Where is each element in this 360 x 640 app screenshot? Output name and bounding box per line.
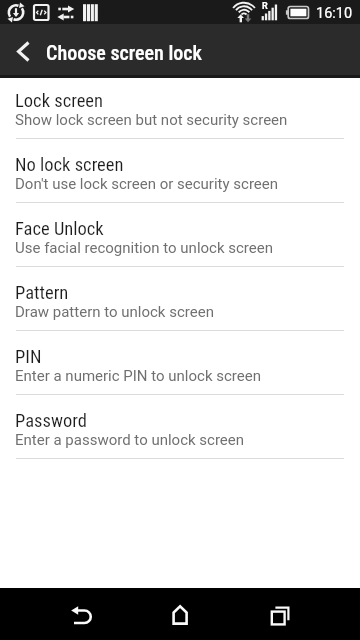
button[interactable]: Lock screen <box>0 75 360 139</box>
staticText: Show lock screen but not security screen <box>15 111 288 129</box>
staticText: Lock screen <box>15 90 103 112</box>
staticText: No lock screen <box>15 154 124 176</box>
staticText: Password <box>15 410 87 432</box>
button[interactable]: Pattern <box>0 267 360 331</box>
staticText: Pattern <box>15 282 69 304</box>
staticText: Draw pattern to unlock screen <box>15 303 214 321</box>
staticText: 16:10 <box>316 5 353 22</box>
button[interactable]: Password <box>0 395 360 459</box>
button[interactable]: PIN <box>0 331 360 395</box>
staticText: R <box>262 1 268 12</box>
button[interactable] <box>156 588 204 640</box>
staticText: Use facial recognition to unlock screen <box>15 239 274 257</box>
button[interactable] <box>256 588 304 640</box>
staticText: Enter a numeric PIN to unlock screen <box>15 367 261 385</box>
button[interactable]: No lock screen <box>0 139 360 203</box>
button[interactable]: Face Unlock <box>0 203 360 267</box>
button[interactable] <box>0 24 44 78</box>
button[interactable] <box>58 588 106 640</box>
staticText: Enter a password to unlock screen <box>15 431 245 449</box>
staticText: Don't use lock screen or security screen <box>15 175 279 193</box>
staticText: PIN <box>15 346 42 368</box>
staticText: Face Unlock <box>15 218 104 240</box>
staticText: Choose screen lock <box>46 41 202 64</box>
